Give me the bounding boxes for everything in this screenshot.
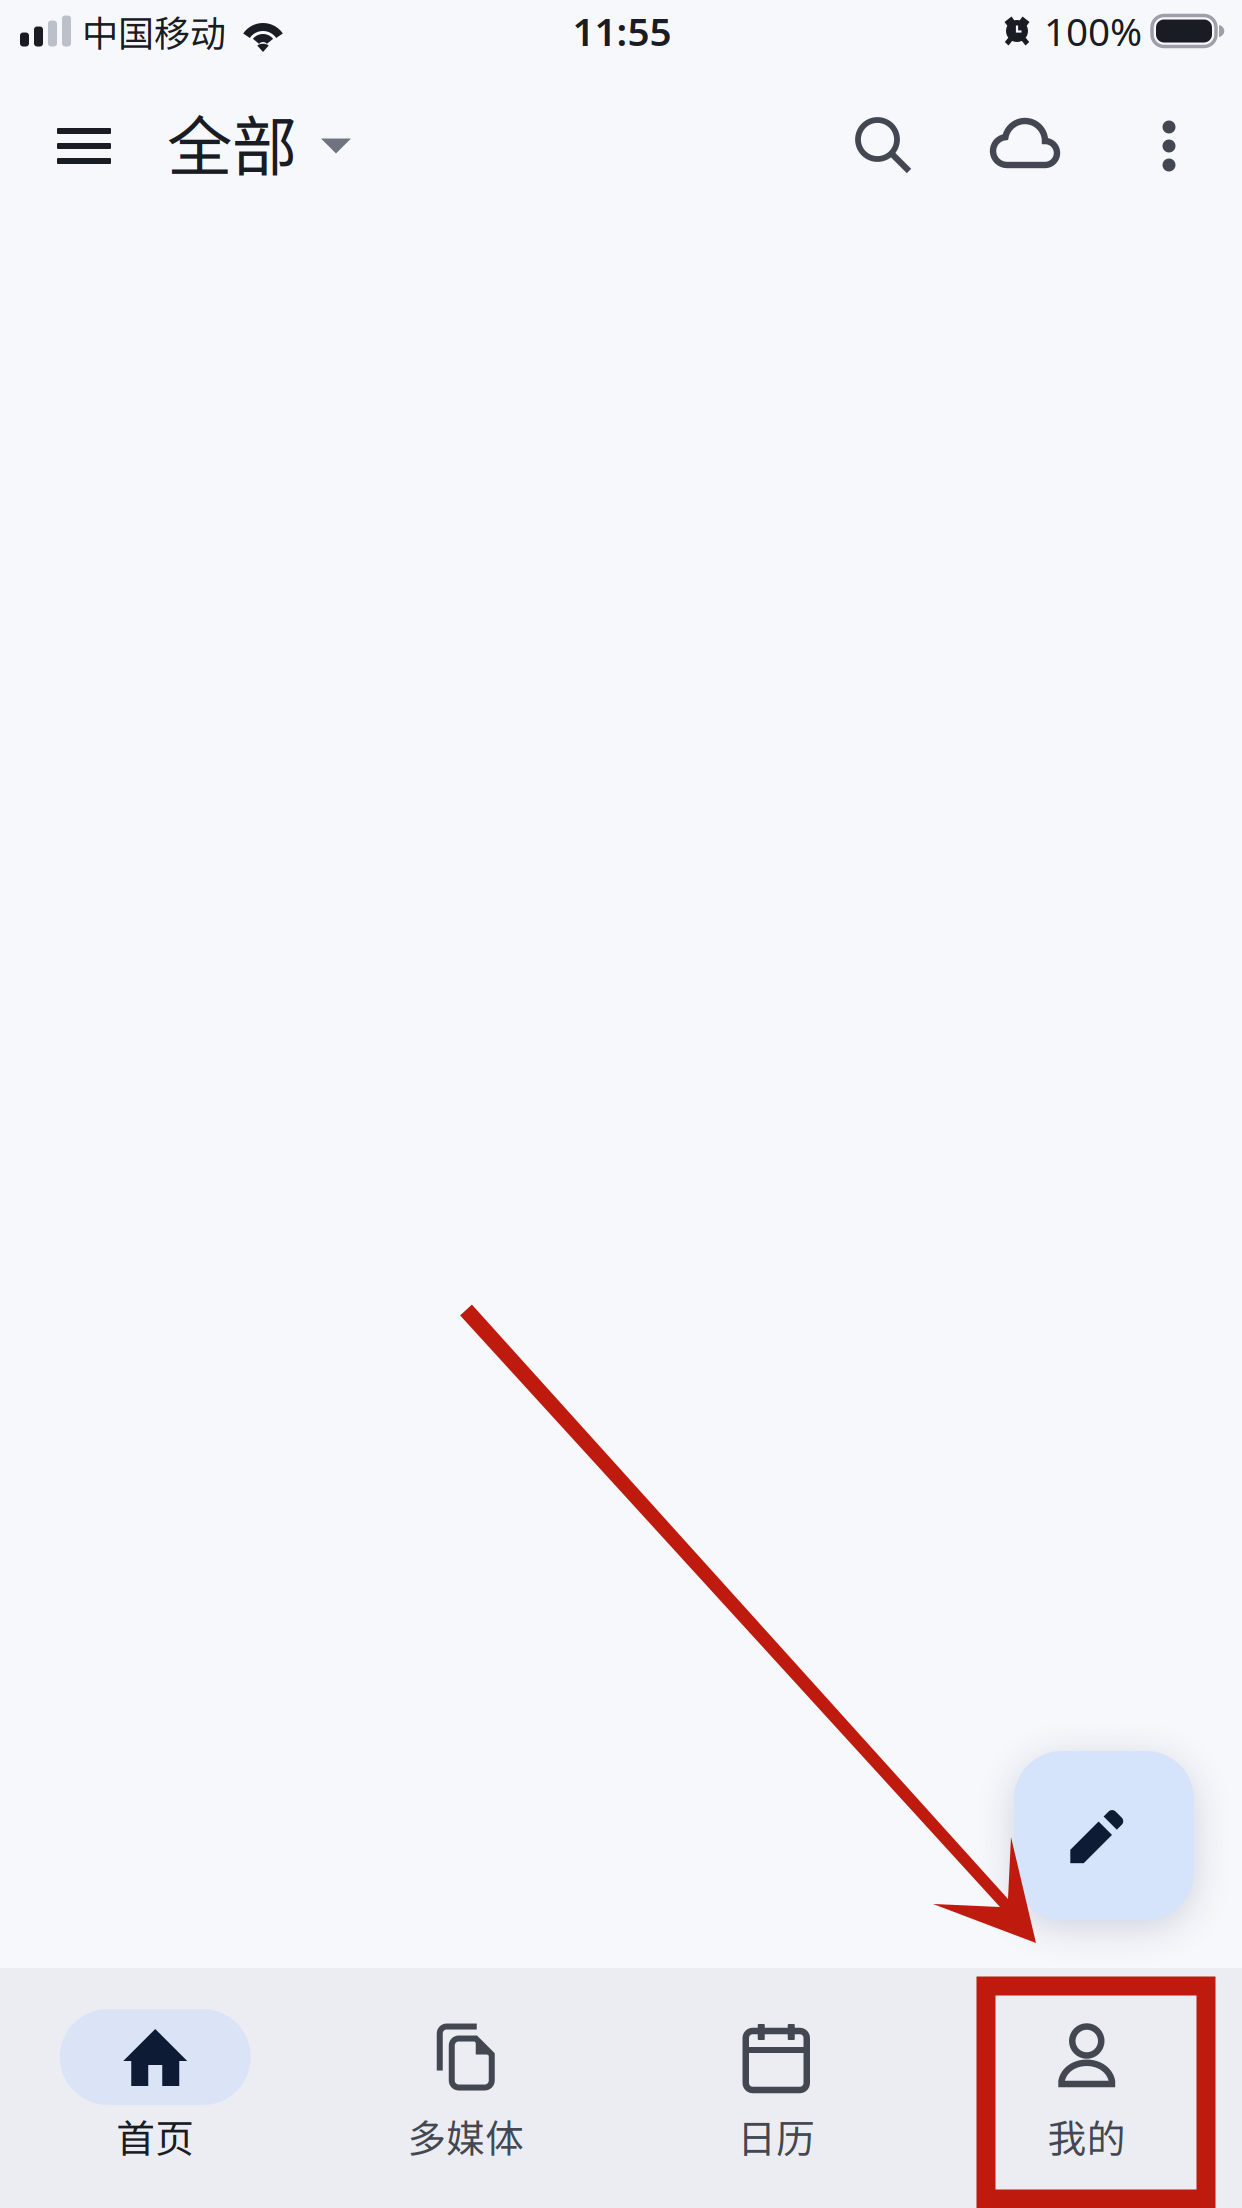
button[interactable]: 首页 bbox=[0, 1968, 310, 2208]
button[interactable]: Menu bbox=[29, 86, 139, 206]
button[interactable]: 日历 bbox=[621, 1968, 931, 2208]
button[interactable]: 全部 bbox=[161, 71, 357, 221]
staticText: 100% bbox=[1044, 5, 1142, 57]
button[interactable]: Cloud storage bbox=[975, 86, 1079, 206]
staticText: 多媒体 bbox=[407, 2108, 524, 2164]
staticText: 11:55 bbox=[572, 5, 671, 57]
button[interactable]: 我的 bbox=[931, 1968, 1242, 2208]
button[interactable]: Search bbox=[832, 86, 936, 206]
button[interactable]: Compose bbox=[1014, 1751, 1194, 1920]
staticText: 全部 bbox=[167, 95, 297, 189]
staticText: 首页 bbox=[116, 2108, 194, 2164]
staticText: 日历 bbox=[737, 2108, 815, 2164]
button[interactable]: 多媒体 bbox=[310, 1968, 621, 2208]
staticText: 我的 bbox=[1048, 2108, 1126, 2164]
staticText: 中国移动 bbox=[82, 5, 226, 57]
button[interactable]: More options bbox=[1124, 86, 1214, 206]
